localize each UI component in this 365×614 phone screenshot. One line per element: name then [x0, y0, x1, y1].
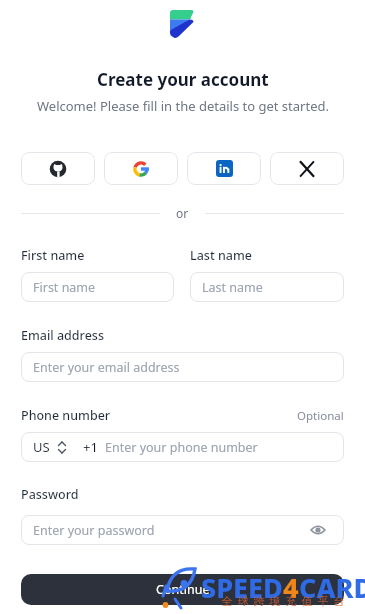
staticText: First name [21, 247, 85, 264]
staticText: Email address [21, 327, 104, 344]
button[interactable]: First name [33, 272, 164, 302]
staticText: Optional [297, 408, 344, 424]
staticText: SPEED [201, 569, 283, 606]
button[interactable] [270, 152, 344, 185]
staticText: First name [33, 279, 96, 296]
staticText: Create your account [97, 68, 269, 91]
staticText: CARD [299, 569, 365, 606]
button[interactable] [21, 152, 95, 185]
button[interactable]: Enter your password [33, 515, 334, 545]
staticText: Welcome! Please fill in the details to g… [37, 97, 329, 115]
staticText: +1 [83, 438, 98, 456]
staticText: 全球跨境充值平台 [219, 594, 347, 608]
staticText: Enter your password [33, 522, 155, 539]
staticText: Enter your email address [33, 359, 180, 376]
staticText: Last name [190, 247, 252, 264]
staticText: 4 [283, 569, 299, 606]
button[interactable]: Enter your email address [33, 352, 334, 382]
staticText: Phone number [21, 407, 111, 424]
staticText: Continue [156, 581, 210, 598]
button[interactable]: US [33, 432, 344, 462]
staticText: US [33, 438, 50, 456]
button[interactable] [104, 152, 178, 185]
button[interactable]: Last name [202, 272, 334, 302]
button[interactable] [187, 152, 261, 185]
button[interactable]: Continue [21, 574, 344, 605]
staticText: Enter your phone number [105, 439, 258, 456]
staticText: Last name [202, 279, 263, 296]
staticText: Password [21, 486, 79, 503]
staticText: or [176, 205, 189, 221]
